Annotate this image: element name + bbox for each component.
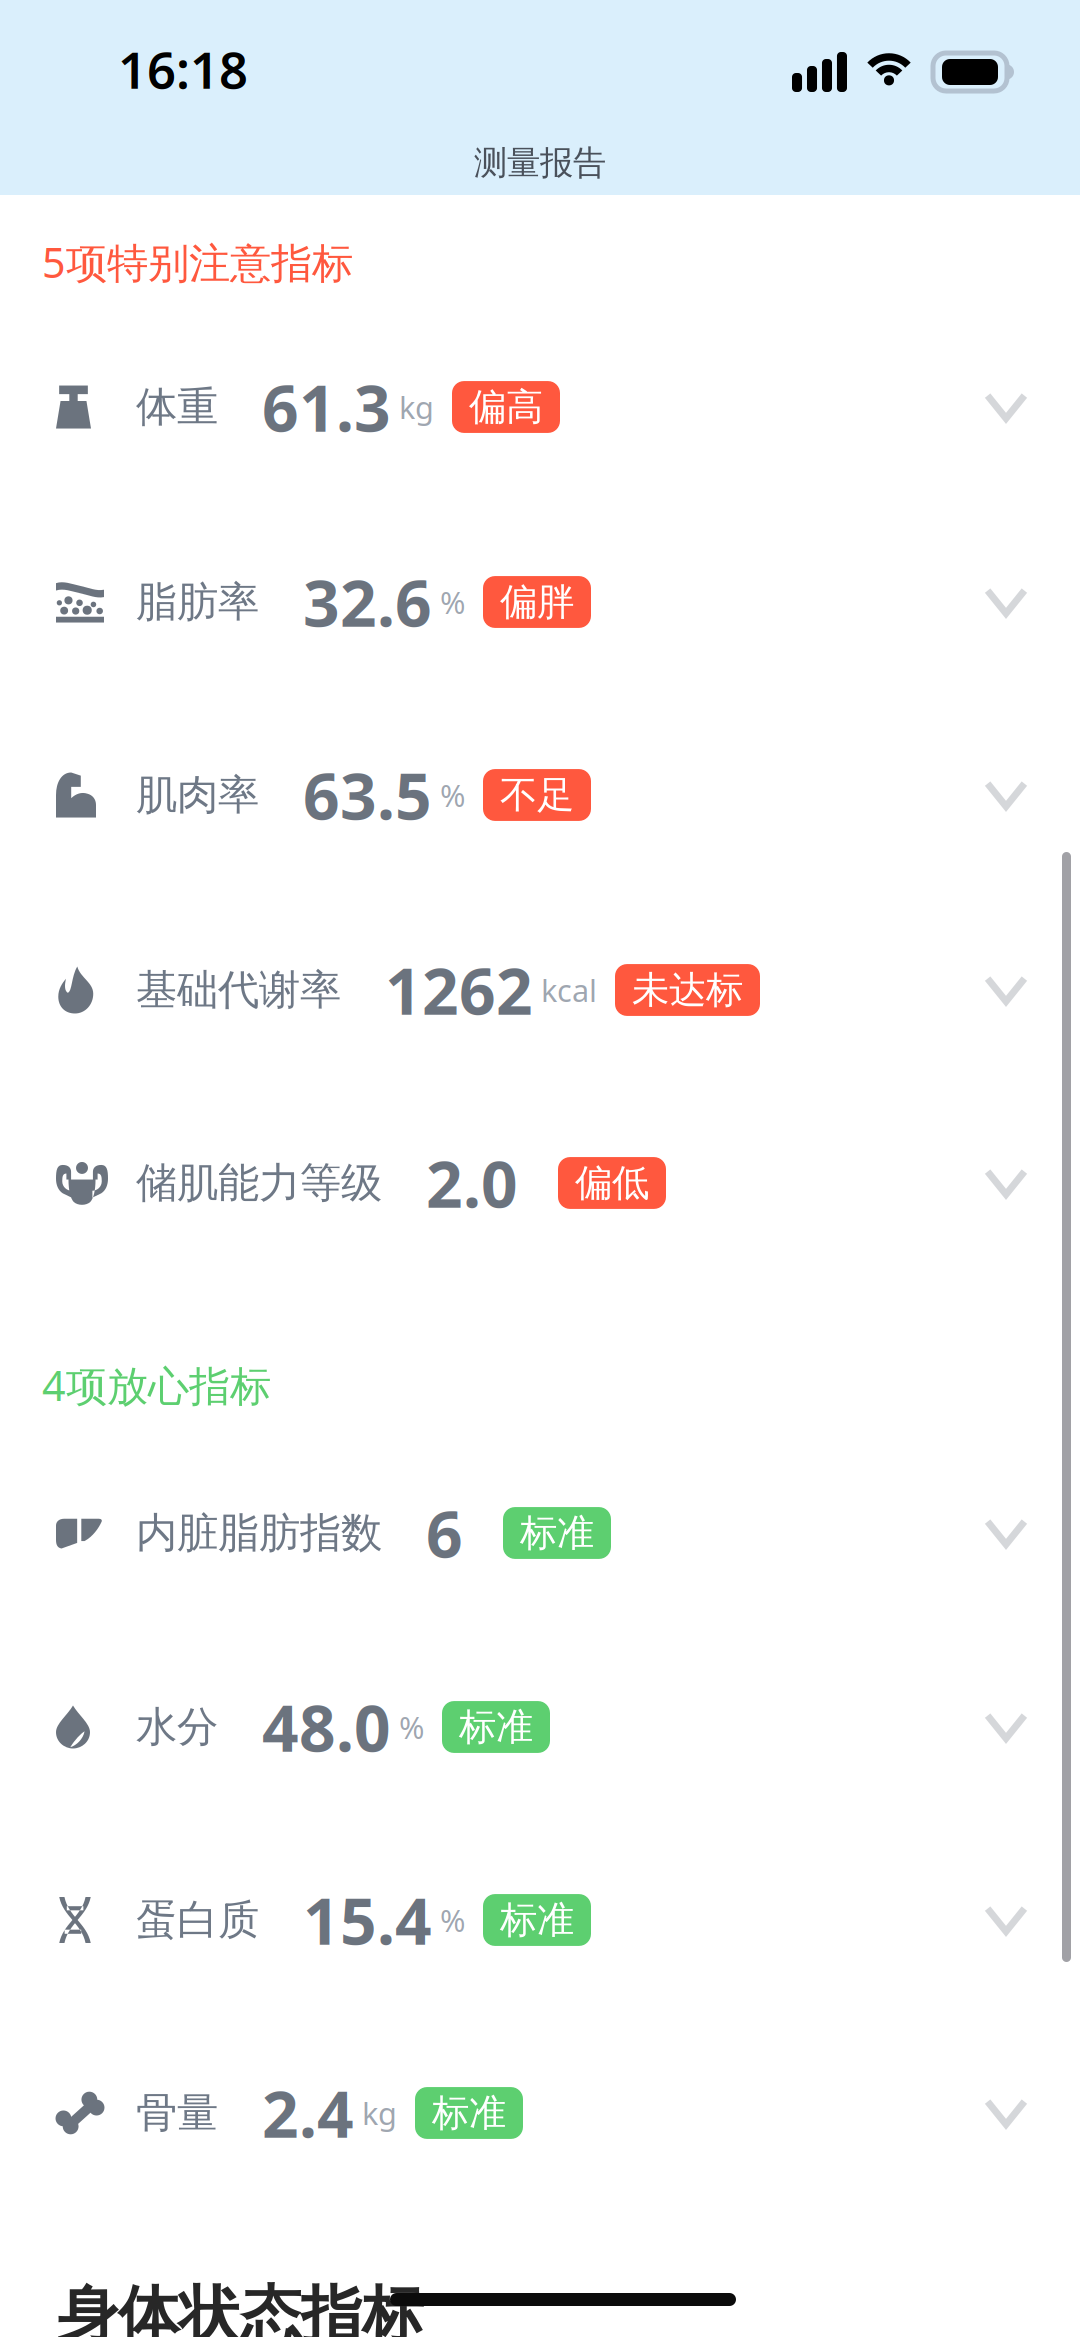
button[interactable]: 储肌能力等级 — [0, 1137, 1080, 1229]
staticText: 2.4 — [262, 2070, 354, 2155]
staticText: 水分 — [136, 1702, 218, 1752]
staticText: kg — [362, 2093, 397, 2133]
staticText: 肌肉率 — [136, 770, 259, 820]
staticText: 48.0 — [262, 1684, 391, 1769]
staticText: 偏低 — [575, 1160, 649, 1206]
staticText: 6 — [426, 1490, 463, 1575]
button[interactable]: 基础代谢率 — [0, 944, 1080, 1036]
staticText: 体重 — [136, 382, 218, 432]
staticText: 内脏脂肪指数 — [136, 1508, 382, 1558]
button[interactable]: 水分 — [0, 1681, 1080, 1773]
staticText: 61.3 — [262, 364, 391, 449]
staticText: % — [399, 1707, 424, 1747]
staticText: 偏胖 — [500, 579, 574, 625]
staticText: 偏高 — [469, 384, 543, 430]
button[interactable]: 肌肉率 — [0, 749, 1080, 841]
staticText: % — [440, 1900, 465, 1940]
staticText: 标准 — [520, 1510, 594, 1556]
button[interactable]: 骨量 — [0, 2067, 1080, 2159]
staticText: 脂肪率 — [136, 577, 259, 627]
button[interactable]: 脂肪率 — [0, 556, 1080, 648]
staticText: kcal — [541, 970, 597, 1010]
staticText: 基础代谢率 — [136, 965, 341, 1015]
staticText: kg — [399, 387, 434, 427]
staticText: 标准 — [500, 1897, 574, 1943]
staticText: 标准 — [459, 1704, 533, 1750]
staticText: 15.4 — [303, 1877, 432, 1962]
staticText: 5项特别注意指标 — [42, 235, 353, 289]
button[interactable]: 蛋白质 — [0, 1874, 1080, 1966]
staticText: 骨量 — [136, 2088, 218, 2138]
staticText: 测量报告 — [474, 142, 606, 183]
staticText: 储肌能力等级 — [136, 1158, 382, 1208]
staticText: 未达标 — [632, 967, 743, 1013]
staticText: 1262 — [385, 947, 533, 1032]
staticText: 16:18 — [118, 35, 248, 103]
staticText: 4项放心指标 — [42, 1358, 271, 1412]
staticText: % — [440, 582, 465, 622]
staticText: % — [440, 775, 465, 815]
staticText: 蛋白质 — [136, 1895, 259, 1945]
button[interactable]: 体重 — [0, 361, 1080, 453]
button[interactable]: 内脏脂肪指数 — [0, 1487, 1080, 1579]
staticText: 2.0 — [426, 1140, 518, 1225]
staticText: 63.5 — [303, 752, 432, 837]
staticText: 身体状态指标 — [57, 2277, 423, 2337]
staticText: 标准 — [432, 2090, 506, 2136]
staticText: 32.6 — [303, 559, 432, 644]
staticText: 不足 — [500, 772, 574, 818]
